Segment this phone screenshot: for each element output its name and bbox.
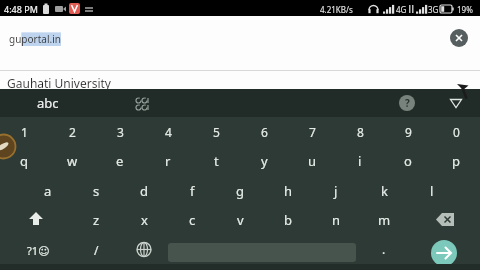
button[interactable]: i (336, 146, 384, 175)
button[interactable]: ? (399, 95, 415, 111)
staticText: r (165, 152, 171, 170)
button[interactable]: ?1☺ (12, 237, 64, 264)
staticText: i (358, 152, 362, 170)
button[interactable]: x (120, 205, 168, 234)
staticText: / (94, 242, 99, 258)
button[interactable]: guportal.in (0, 16, 480, 70)
staticText: 1 (21, 124, 28, 140)
staticText: 5 (213, 124, 220, 140)
staticText: p (452, 152, 460, 170)
staticText: t (214, 152, 219, 170)
button[interactable]: g (216, 176, 264, 205)
button[interactable]: n (312, 205, 360, 234)
staticText: ? (405, 96, 410, 110)
button[interactable]: u (288, 146, 336, 175)
button[interactable] (6, 205, 66, 234)
button[interactable]: r (144, 146, 192, 175)
button[interactable]: l (408, 176, 456, 205)
button[interactable]: d (120, 176, 168, 205)
staticText: ?1☺ (27, 243, 50, 258)
staticText: 4 (165, 124, 172, 140)
button[interactable] (431, 240, 457, 266)
staticText: a (44, 182, 52, 200)
button[interactable] (124, 235, 164, 264)
button[interactable]: 2 (48, 117, 96, 146)
staticText: 2 (69, 124, 76, 140)
button[interactable]: j (312, 176, 360, 205)
button[interactable]: / (72, 235, 120, 264)
staticText: q (20, 152, 28, 170)
button[interactable] (446, 92, 467, 113)
staticText: guportal.in (9, 32, 61, 46)
staticText: Gauhati University (7, 75, 111, 91)
button[interactable]: abc (24, 89, 72, 117)
staticText: . (382, 241, 386, 257)
staticText: 4G (396, 4, 407, 15)
button[interactable]: a (24, 176, 72, 205)
button[interactable]: m (360, 205, 408, 234)
staticText: v (237, 211, 244, 229)
staticText: g (236, 182, 244, 200)
staticText: f (190, 182, 195, 200)
staticText: 9 (405, 124, 412, 140)
button[interactable]: 8 (336, 117, 384, 146)
staticText: 8 (357, 124, 364, 140)
button[interactable]: q (0, 146, 48, 175)
button[interactable]: p (432, 146, 480, 175)
staticText: x (141, 211, 148, 229)
button[interactable] (450, 29, 468, 47)
staticText: 6 (261, 124, 268, 140)
staticText: 3 (117, 124, 124, 140)
button[interactable]: v (216, 205, 264, 234)
staticText: m (378, 211, 391, 229)
staticText: 7 (309, 124, 316, 140)
staticText: l (430, 182, 434, 200)
button[interactable]: 4 (144, 117, 192, 146)
staticText: s (93, 182, 100, 200)
staticText: abc (37, 94, 59, 112)
button[interactable]: z (72, 205, 120, 234)
button[interactable]: o (384, 146, 432, 175)
button[interactable]: h (264, 176, 312, 205)
button[interactable]: Gauhati University (0, 71, 480, 89)
button[interactable]: c (168, 205, 216, 234)
button[interactable]: w (48, 146, 96, 175)
button[interactable]: t (192, 146, 240, 175)
button[interactable]: 3 (96, 117, 144, 146)
button[interactable]: 6 (240, 117, 288, 146)
button[interactable]: 1 (0, 117, 48, 146)
button[interactable]: s (72, 176, 120, 205)
button[interactable]: 9 (384, 117, 432, 146)
staticText: w (67, 152, 78, 170)
staticText: 0 (453, 124, 460, 140)
staticText: k (381, 182, 388, 200)
button[interactable]: y (240, 146, 288, 175)
button[interactable] (414, 205, 474, 234)
staticText: b (284, 211, 292, 229)
staticText: j (334, 182, 338, 200)
staticText: o (404, 152, 412, 170)
button[interactable]: 5 (192, 117, 240, 146)
staticText: e (116, 152, 124, 170)
staticText: 3G (428, 4, 439, 15)
button[interactable]: b (264, 205, 312, 234)
button[interactable]: f (168, 176, 216, 205)
staticText: 4.21KB/s (320, 4, 353, 15)
button[interactable]: k (360, 176, 408, 205)
button[interactable]: 7 (288, 117, 336, 146)
button[interactable]: 0 (432, 117, 480, 146)
staticText: h (284, 182, 293, 200)
staticText: 4:48 PM (4, 3, 38, 15)
staticText: z (93, 211, 100, 229)
staticText: y (261, 152, 268, 170)
staticText: d (140, 182, 148, 200)
staticText: c (189, 211, 196, 229)
staticText: n (332, 211, 341, 229)
staticText: 19% (457, 4, 473, 15)
staticText: u (308, 152, 317, 170)
button[interactable]: e (96, 146, 144, 175)
